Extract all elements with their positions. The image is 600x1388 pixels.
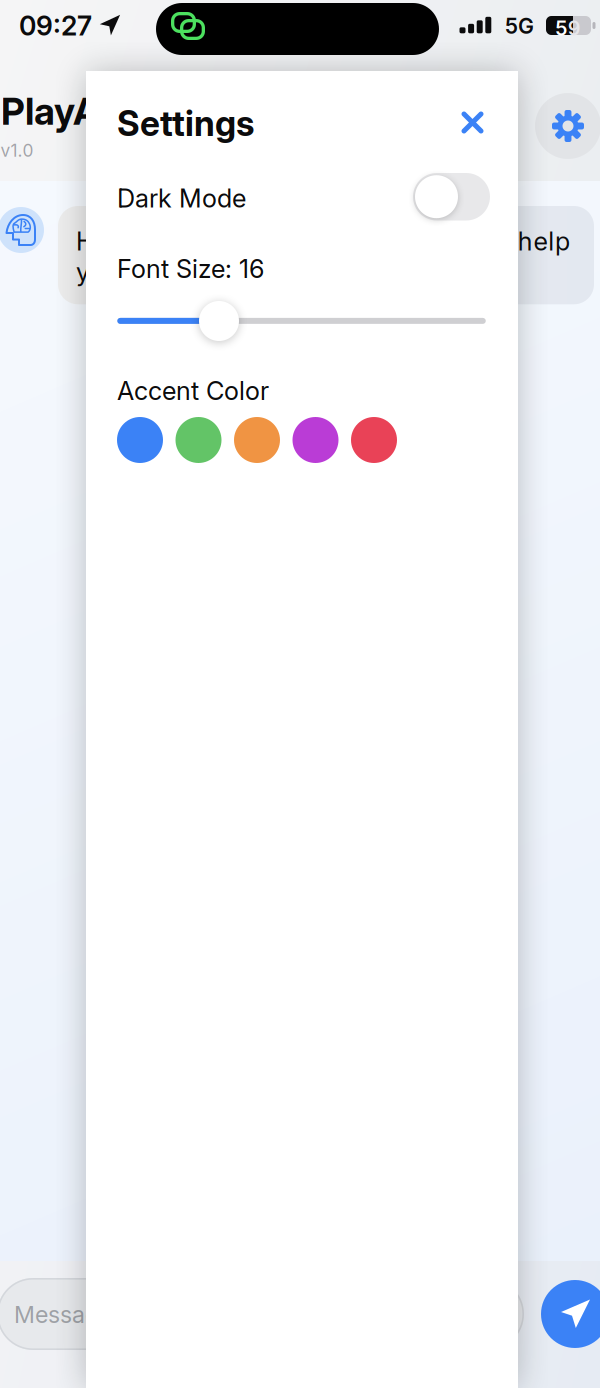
button[interactable]: Close [450,100,494,144]
staticText: Font Size: 16 [117,253,264,284]
button[interactable]: Settings [535,93,600,159]
button[interactable]: Red accent colour [351,417,397,463]
button[interactable]: Blue accent colour [117,417,163,463]
button[interactable]: Green accent colour [175,417,221,463]
staticText: 5 [555,16,567,40]
button[interactable]: Purple accent colour [292,417,338,463]
staticText: 9 [568,16,581,40]
staticText: 09:27 [19,10,92,42]
button[interactable]: Orange accent colour [234,417,280,463]
staticText: Dark Mode [117,183,246,214]
button[interactable]: Send [541,1280,600,1348]
staticText: PlayAI [1,89,110,134]
staticText: Hi! I'm your AI assistant. How can I hel… [76,226,570,287]
button[interactable]: Dark Mode [413,173,490,220]
staticText: Message... [14,1300,130,1328]
staticText: 5G [505,13,534,39]
staticText: v1.0 [0,140,33,161]
staticText: Accent Color [117,375,269,406]
button[interactable]: Message... [0,1278,524,1350]
staticText: Settings [117,102,254,144]
button[interactable]: Font size slider [199,301,239,341]
